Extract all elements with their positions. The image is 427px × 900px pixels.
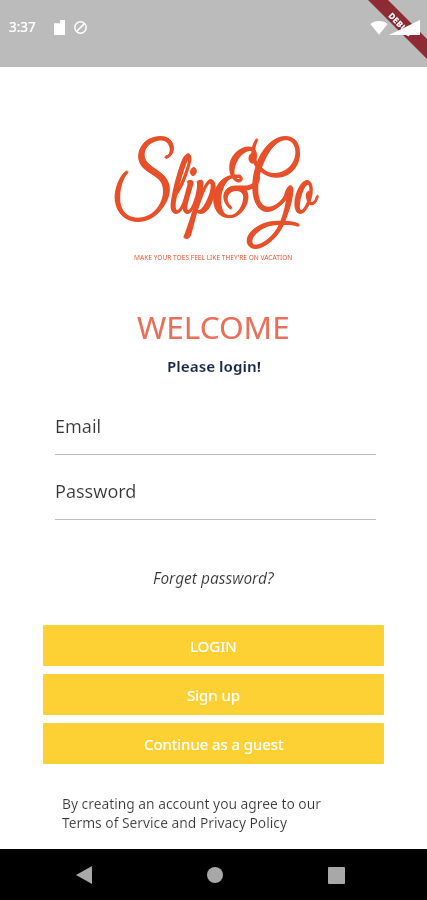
staticText: Password (55, 479, 137, 504)
staticText: LOGIN (190, 636, 237, 656)
button[interactable]: Email (55, 414, 376, 455)
staticText: Slip&Go (112, 135, 313, 250)
button[interactable]: Home (195, 855, 235, 895)
staticText: Slip&Go (113, 136, 314, 251)
staticText: Continue as a guest (144, 734, 284, 754)
staticText: Slip&Go (113, 134, 314, 249)
staticText: WELCOME (137, 305, 290, 348)
button[interactable]: Password (55, 479, 376, 520)
staticText: Slip&Go (114, 135, 315, 250)
staticText: By creating an account you agree to our … (62, 794, 321, 832)
button[interactable]: LOGIN (43, 625, 384, 666)
staticText: DEBUG (386, 10, 415, 39)
staticText: Forget password? (153, 567, 274, 588)
staticText: Email (55, 414, 102, 439)
button[interactable]: Back (64, 855, 104, 895)
button[interactable]: Sign up (43, 674, 384, 715)
staticText: Slip&Go (113, 135, 314, 250)
button[interactable]: Continue as a guest (43, 723, 384, 764)
staticText: MAKE YOUR TOES FEEL LIKE THEY'RE ON VACA… (134, 253, 293, 262)
staticText: Please login! (167, 356, 261, 376)
staticText: 3:37 (9, 18, 36, 36)
staticText: Sign up (187, 685, 240, 705)
button[interactable]: Recent apps (316, 855, 356, 895)
